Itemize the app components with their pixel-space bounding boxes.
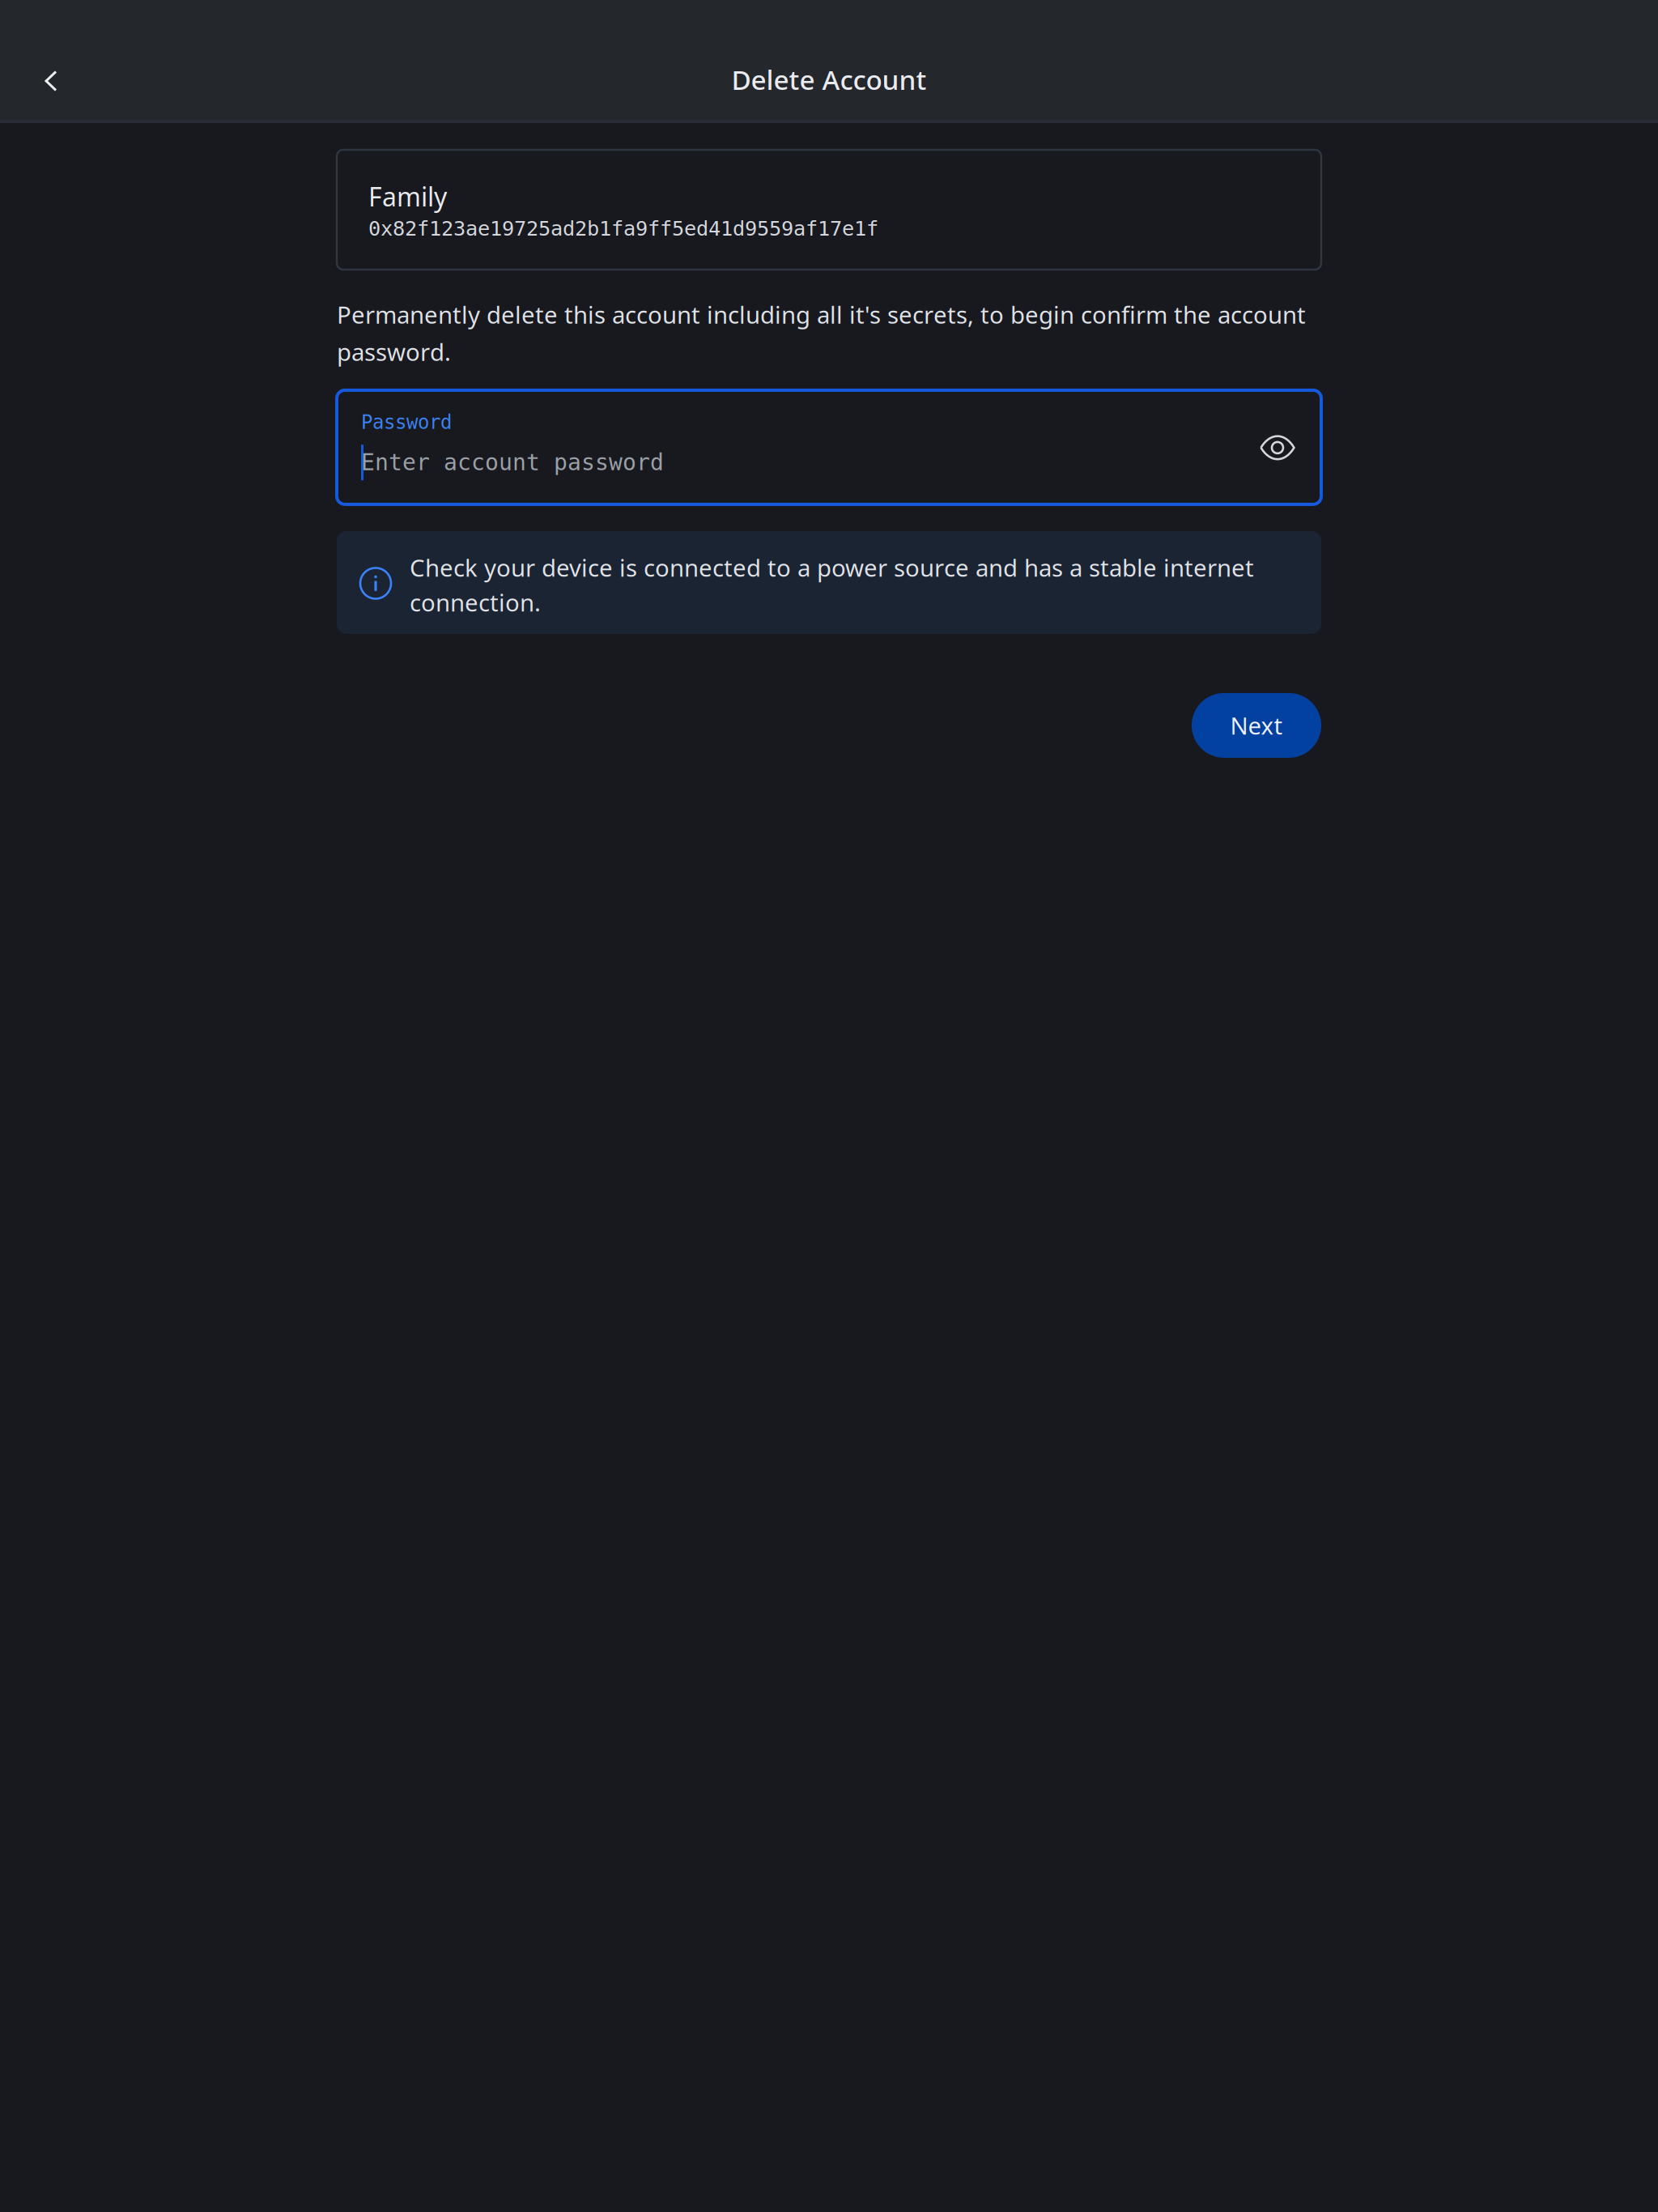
staticText: 0x82f123ae19725ad2b1fa9ff5ed41d9559af17e… xyxy=(368,217,878,240)
staticText: Delete Account xyxy=(731,61,927,97)
staticText: Enter account password xyxy=(361,450,664,475)
staticText: Permanently delete this account includin… xyxy=(337,299,1306,368)
button[interactable]: Back xyxy=(17,45,85,113)
staticText: Family xyxy=(368,179,447,214)
staticText: Password xyxy=(361,411,452,433)
button[interactable]: Next xyxy=(1192,693,1321,758)
staticText: Check your device is connected to a powe… xyxy=(410,552,1254,618)
button[interactable]: Show password xyxy=(1252,424,1303,471)
staticText: Next xyxy=(1230,710,1283,741)
